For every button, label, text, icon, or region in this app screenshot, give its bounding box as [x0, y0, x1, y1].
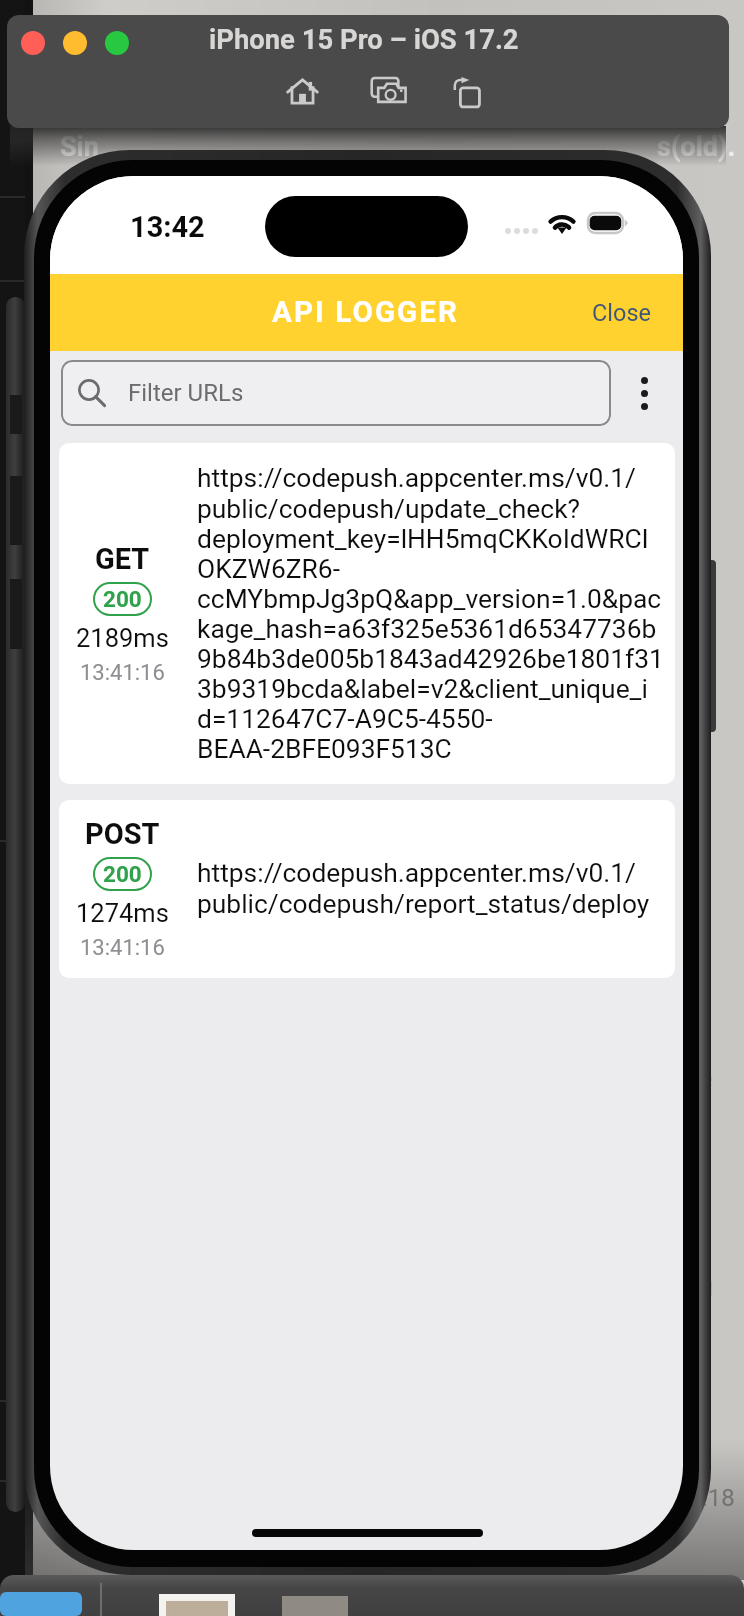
button[interactable]: Home [278, 69, 326, 113]
staticText: e [700, 1065, 713, 1093]
button[interactable]: POST [59, 800, 675, 978]
staticText: iPhone 15 Pro – iOS 17.2 [209, 24, 519, 56]
staticText: ) [698, 300, 708, 330]
staticText: 5.18 [688, 1484, 735, 1512]
button[interactable]: Close window [21, 31, 45, 55]
staticText: GET [95, 542, 150, 576]
staticText: https://codepush.appcenter.ms/v0.1/ publ… [197, 858, 675, 920]
staticText: 200 [103, 586, 142, 612]
button[interactable]: Screenshot [365, 69, 413, 113]
button[interactable]: Minimise window [63, 31, 87, 55]
button[interactable]: Maximise window [105, 31, 129, 55]
staticText: Close [592, 299, 652, 327]
button[interactable]: Close [592, 299, 652, 327]
staticText: Sin [60, 131, 99, 163]
staticText: Filter URLs [128, 379, 244, 407]
staticText: 13:41:16 [80, 660, 165, 686]
staticText: POST [85, 817, 160, 851]
staticText: s(old). [657, 131, 736, 163]
staticText: g [700, 1272, 714, 1300]
button[interactable]: More options [621, 368, 667, 418]
staticText: 2189ms [76, 623, 169, 653]
staticText: 13:42 [130, 210, 205, 244]
button[interactable]: Filter URLs [61, 360, 611, 426]
staticText: 1274ms [76, 898, 169, 928]
staticText: API LOGGER [272, 295, 459, 330]
staticText: 200 [103, 861, 142, 887]
button[interactable]: GET [59, 443, 675, 784]
staticText: 13:41:16 [80, 935, 165, 961]
staticText: https://codepush.appcenter.ms/v0.1/ publ… [197, 463, 675, 765]
button[interactable]: Rotate device [444, 69, 488, 113]
